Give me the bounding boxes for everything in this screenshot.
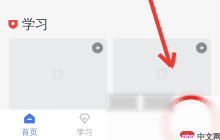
staticText: 学习 <box>22 16 48 32</box>
button[interactable]: Play <box>92 42 103 53</box>
staticText: php <box>182 132 194 140</box>
button[interactable]: 首页 <box>2 110 57 140</box>
staticText: 学习 <box>76 127 92 137</box>
staticText: 中文网 <box>197 132 220 140</box>
button[interactable]: Video <box>113 38 211 109</box>
button[interactable]: Video <box>9 38 107 109</box>
button[interactable]: 学习 <box>57 110 112 140</box>
staticText: 首页 <box>21 127 37 137</box>
button[interactable]: Play <box>196 42 207 53</box>
